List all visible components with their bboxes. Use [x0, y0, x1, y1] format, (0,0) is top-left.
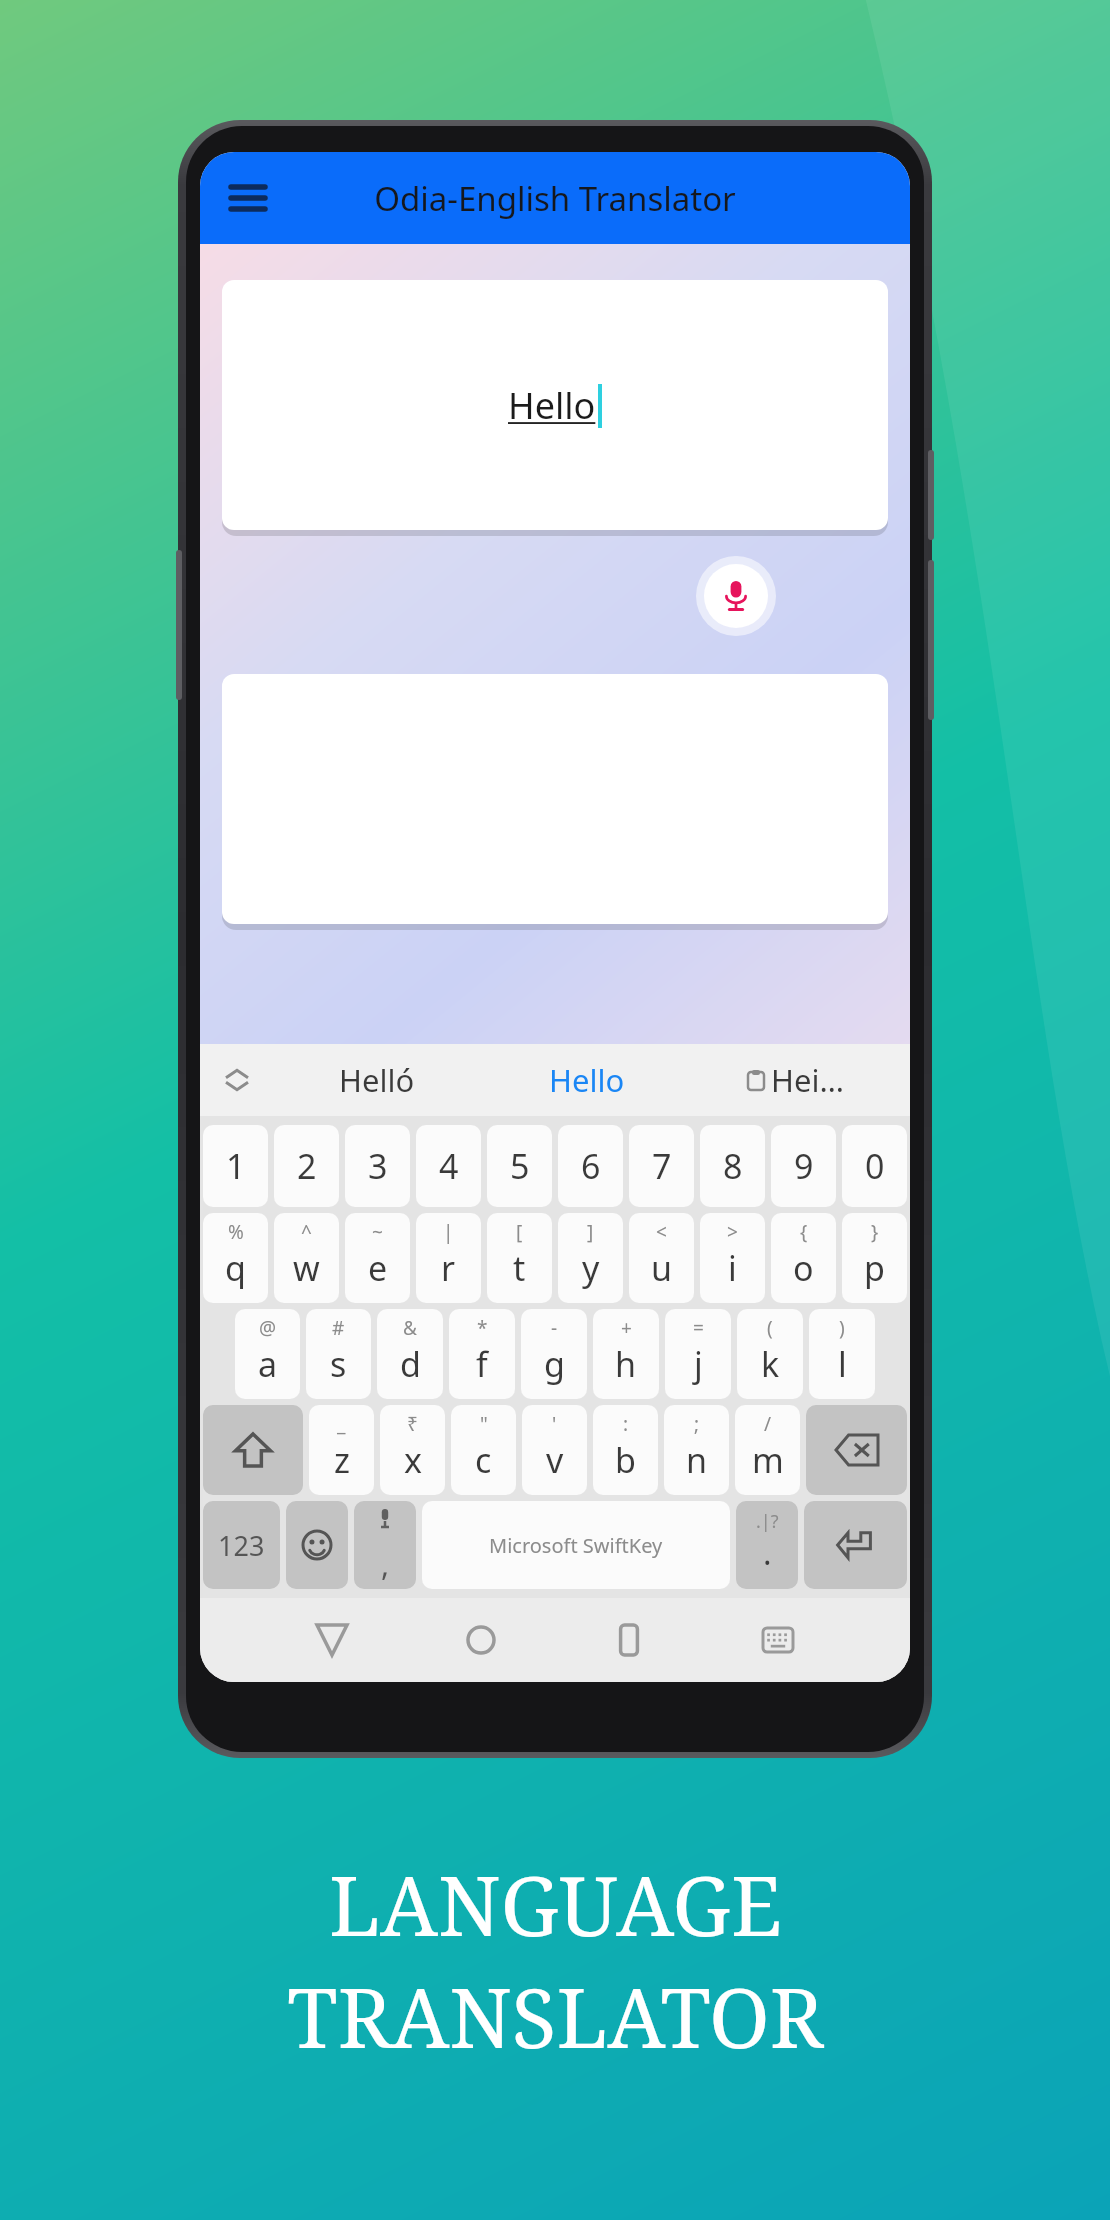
- button[interactable]: 5: [487, 1125, 552, 1207]
- staticText: ]: [587, 1219, 594, 1245]
- button[interactable]: [: [487, 1213, 552, 1303]
- button[interactable]: Voice input: [696, 556, 776, 636]
- button[interactable]: Hello: [482, 1044, 691, 1116]
- button[interactable]: ': [522, 1405, 587, 1495]
- button[interactable]: Helló: [272, 1044, 482, 1116]
- staticText: l: [838, 1341, 847, 1387]
- staticText: Odia-English Translator: [374, 176, 736, 221]
- button[interactable]: Hei…: [691, 1044, 900, 1116]
- staticText: (: [767, 1315, 773, 1341]
- staticText: 5: [510, 1143, 530, 1189]
- staticText: ': [552, 1411, 557, 1437]
- staticText: ,: [381, 1544, 390, 1585]
- button[interactable]: ~: [345, 1213, 410, 1303]
- staticText: ^: [301, 1219, 312, 1245]
- button[interactable]: 0: [842, 1125, 907, 1207]
- button[interactable]: Open navigation menu: [220, 170, 276, 226]
- staticText: 3: [368, 1143, 388, 1189]
- button[interactable]: 2: [274, 1125, 339, 1207]
- button[interactable]: =: [665, 1309, 731, 1399]
- staticText: 2: [297, 1143, 317, 1189]
- button[interactable]: 8: [700, 1125, 765, 1207]
- button[interactable]: Space: [422, 1501, 730, 1589]
- staticText: @: [259, 1315, 277, 1341]
- button[interactable]: *: [449, 1309, 515, 1399]
- button[interactable]: ]: [558, 1213, 623, 1303]
- staticText: #: [332, 1315, 345, 1341]
- button[interactable]: Backspace: [806, 1405, 907, 1495]
- staticText: LANGUAGE: [329, 1848, 782, 1960]
- button[interactable]: #: [306, 1309, 371, 1399]
- staticText: _: [337, 1411, 346, 1437]
- staticText: 8: [723, 1143, 743, 1189]
- staticText: j: [694, 1341, 703, 1387]
- button[interactable]: 123: [203, 1501, 280, 1589]
- button[interactable]: 3: [345, 1125, 410, 1207]
- staticText: <: [656, 1219, 667, 1245]
- staticText: 7: [652, 1143, 672, 1189]
- button[interactable]: Home: [459, 1618, 503, 1662]
- button[interactable]: Recent apps: [607, 1618, 651, 1662]
- staticText: y: [582, 1245, 600, 1291]
- button[interactable]: _: [309, 1405, 374, 1495]
- staticText: Hello: [508, 381, 596, 430]
- staticText: =: [693, 1315, 704, 1341]
- button[interactable]: {: [771, 1213, 836, 1303]
- button[interactable]: <: [629, 1213, 694, 1303]
- staticText: >: [727, 1219, 738, 1245]
- staticText: TRANSLATOR: [287, 1960, 824, 2072]
- staticText: {: [800, 1219, 808, 1245]
- staticText: %: [228, 1219, 244, 1245]
- button[interactable]: Switch keyboard: [756, 1618, 800, 1662]
- staticText: ;: [694, 1411, 700, 1437]
- button[interactable]: Expand suggestions: [226, 1069, 248, 1091]
- button[interactable]: @: [235, 1309, 300, 1399]
- button[interactable]: Enter: [804, 1501, 907, 1589]
- button[interactable]: ;: [664, 1405, 729, 1495]
- staticText: c: [475, 1437, 492, 1483]
- staticText: Helló: [339, 1059, 415, 1101]
- button[interactable]: ₹: [380, 1405, 445, 1495]
- staticText: r: [441, 1245, 456, 1291]
- staticText: .|?: [756, 1509, 779, 1534]
- button[interactable]: Emoji: [286, 1501, 348, 1589]
- button[interactable]: /: [735, 1405, 800, 1495]
- button[interactable]: Shift: [203, 1405, 303, 1495]
- button[interactable]: -: [521, 1309, 587, 1399]
- button[interactable]: Hello: [222, 280, 888, 530]
- staticText: 4: [439, 1143, 459, 1189]
- staticText: w: [293, 1245, 320, 1291]
- button[interactable]: 6: [558, 1125, 623, 1207]
- button[interactable]: +: [593, 1309, 659, 1399]
- button[interactable]: |: [416, 1213, 481, 1303]
- button[interactable]: ): [809, 1309, 875, 1399]
- staticText: +: [621, 1315, 632, 1341]
- staticText: ~: [372, 1219, 383, 1245]
- staticText: 1: [226, 1143, 246, 1189]
- button[interactable]: :: [593, 1405, 658, 1495]
- staticText: .: [763, 1531, 772, 1575]
- staticText: v: [546, 1437, 564, 1483]
- button[interactable]: ^: [274, 1213, 339, 1303]
- staticText: -: [551, 1315, 558, 1341]
- staticText: ₹: [407, 1411, 418, 1437]
- staticText: /: [764, 1411, 772, 1437]
- staticText: k: [761, 1341, 780, 1387]
- button[interactable]: }: [842, 1213, 907, 1303]
- button[interactable]: &: [377, 1309, 443, 1399]
- button[interactable]: Back: [310, 1618, 354, 1662]
- button[interactable]: .|?: [736, 1501, 798, 1589]
- button[interactable]: >: [700, 1213, 765, 1303]
- button[interactable]: 4: [416, 1125, 481, 1207]
- button[interactable]: 1: [203, 1125, 268, 1207]
- staticText: 0: [865, 1143, 885, 1189]
- button[interactable]: Voice typing: [354, 1501, 416, 1589]
- button[interactable]: 7: [629, 1125, 694, 1207]
- button[interactable]: %: [203, 1213, 268, 1303]
- staticText: z: [334, 1437, 350, 1483]
- staticText: }: [871, 1219, 879, 1245]
- button[interactable]: ": [451, 1405, 516, 1495]
- button[interactable]: 9: [771, 1125, 836, 1207]
- button[interactable]: (: [737, 1309, 803, 1399]
